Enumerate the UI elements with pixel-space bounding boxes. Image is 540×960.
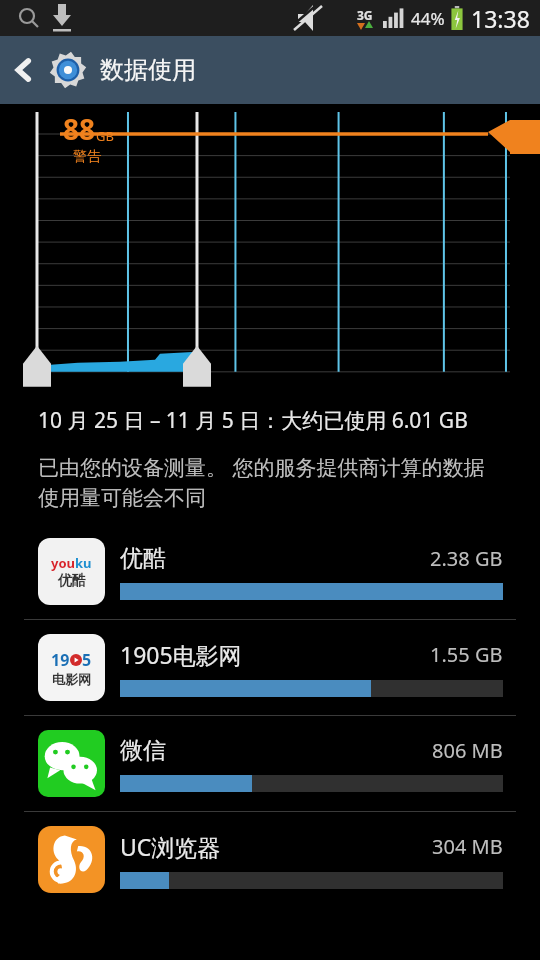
staticText: 已由您的设备测量。 您的服务提供商计算的数据使用量可能会不同: [38, 453, 502, 512]
button[interactable]: UC浏览器: [0, 812, 540, 907]
staticText: 13:38: [471, 3, 530, 34]
staticText: 3G: [357, 7, 373, 23]
staticText: 304 MB: [432, 833, 503, 860]
staticText: UC浏览器: [120, 831, 432, 862]
staticText: 5: [82, 649, 92, 671]
staticText: 2.38 GB: [430, 545, 503, 572]
staticText: 电影网: [52, 671, 91, 687]
staticText: 1.55 GB: [430, 641, 503, 668]
button[interactable]: 微信: [0, 716, 540, 811]
staticText: 优酷: [120, 544, 430, 573]
staticText: 警告: [73, 148, 101, 166]
staticText: ku: [75, 554, 92, 572]
staticText: 806 MB: [432, 737, 503, 764]
button[interactable]: Back: [0, 46, 48, 94]
staticText: 1905电影网: [120, 639, 430, 670]
staticText: 数据使用: [100, 55, 196, 85]
staticText: GB: [96, 127, 114, 145]
button[interactable]: you: [0, 524, 540, 619]
staticText: 88: [63, 110, 96, 148]
staticText: 19: [51, 649, 70, 671]
staticText: you: [51, 554, 75, 572]
staticText: 微信: [120, 736, 432, 765]
staticText: 10 月 25 日 – 11 月 5 日：大约已使用 6.01 GB: [38, 406, 468, 435]
staticText: 44%: [411, 7, 445, 30]
button[interactable]: 19: [0, 620, 540, 715]
staticText: 优酷: [58, 572, 86, 590]
